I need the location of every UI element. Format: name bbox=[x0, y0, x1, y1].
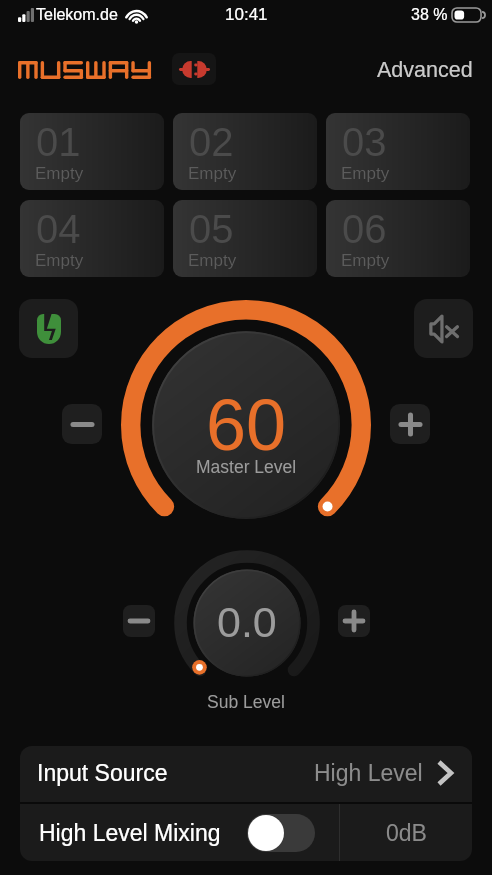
button[interactable]: Increase sub level bbox=[338, 605, 370, 637]
staticText: High Level Mixing bbox=[39, 820, 221, 846]
button[interactable]: 01 bbox=[20, 113, 164, 190]
button[interactable]: Input Source bbox=[20, 746, 472, 802]
button[interactable]: Increase master level bbox=[390, 404, 430, 444]
staticText: 06 bbox=[342, 207, 387, 252]
staticText: High Level bbox=[314, 760, 423, 786]
staticText: Telekom.de bbox=[36, 6, 118, 24]
staticText: Master Level bbox=[196, 457, 297, 477]
staticText: Sub Level bbox=[0, 692, 492, 712]
button[interactable]: 06 bbox=[326, 200, 470, 277]
button[interactable]: 02 bbox=[173, 113, 317, 190]
staticText: Input Source bbox=[37, 760, 168, 786]
staticText: 04 bbox=[36, 207, 81, 252]
staticText: Advanced bbox=[377, 58, 473, 82]
button[interactable]: High Level Mixing bbox=[20, 804, 339, 861]
button[interactable]: 04 bbox=[20, 200, 164, 277]
staticText: Empty bbox=[341, 164, 390, 183]
button[interactable]: Decrease sub level bbox=[123, 605, 155, 637]
button[interactable]: High Level Mixing bbox=[247, 814, 315, 852]
button[interactable]: 03 bbox=[326, 113, 470, 190]
staticText: Empty bbox=[341, 251, 390, 270]
staticText: Empty bbox=[188, 164, 237, 183]
staticText: 60 bbox=[206, 385, 287, 465]
staticText: 01 bbox=[36, 120, 81, 165]
staticText: 0.0 bbox=[217, 598, 277, 646]
staticText: Empty bbox=[35, 164, 84, 183]
staticText: Empty bbox=[188, 251, 237, 270]
button[interactable]: Advanced bbox=[377, 58, 473, 82]
staticText: 02 bbox=[189, 120, 234, 165]
other: MUSWAY bbox=[18, 61, 154, 79]
staticText: 05 bbox=[189, 207, 234, 252]
staticText: 03 bbox=[342, 120, 387, 165]
staticText: Empty bbox=[35, 251, 84, 270]
button[interactable]: Device not connected bbox=[172, 53, 216, 85]
button[interactable]: Decrease master level bbox=[62, 404, 102, 444]
button[interactable]: Mute bbox=[414, 299, 473, 358]
button[interactable]: Sub Level knob bbox=[167, 543, 327, 703]
button[interactable]: 05 bbox=[173, 200, 317, 277]
button[interactable]: 0dB bbox=[340, 804, 472, 861]
staticText: 38 % bbox=[411, 6, 448, 24]
staticText: 0dB bbox=[386, 820, 427, 846]
staticText: 10:41 bbox=[225, 5, 268, 24]
button[interactable]: Master Level knob bbox=[116, 295, 376, 555]
button[interactable]: Power bbox=[19, 299, 78, 358]
